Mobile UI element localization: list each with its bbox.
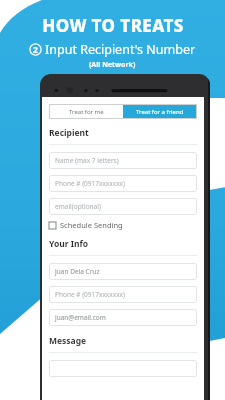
staticText: HOW TO TREATS [42,14,184,37]
button[interactable]: Phone # (0917xxxxxxx) [49,286,197,303]
staticText: Treat for a friend [136,108,184,116]
staticText: Juan Dela Cruz [55,267,100,276]
button[interactable] [49,360,197,377]
staticText: Treat for me [69,108,104,116]
staticText: email(optional) [55,202,101,211]
button[interactable]: email(optional) [49,198,197,215]
staticText: Name (max 7 letters) [55,156,119,165]
button[interactable]: Treat for me [49,104,123,119]
staticText: (All Network) [89,60,136,70]
button[interactable]: juan@email.com [49,309,197,326]
staticText: Phone # (0917xxxxxxx) [55,290,125,299]
staticText: Message [49,335,87,347]
button[interactable]: Schedule Sending [49,220,197,230]
staticText: Your Info [49,238,89,250]
button[interactable]: Treat for a friend [123,104,197,119]
button[interactable]: Phone # (0917xxxxxxx) [49,175,197,192]
staticText: 2 [33,44,38,56]
button[interactable]: Juan Dela Cruz [49,263,197,280]
staticText: Schedule Sending [60,220,123,230]
staticText: Input Recipient's Number [45,41,196,58]
staticText: Recipient [49,127,89,139]
staticText: juan@email.com [55,313,106,322]
staticText: Phone # (0917xxxxxxx) [55,179,125,188]
button[interactable]: Name (max 7 letters) [49,152,197,169]
